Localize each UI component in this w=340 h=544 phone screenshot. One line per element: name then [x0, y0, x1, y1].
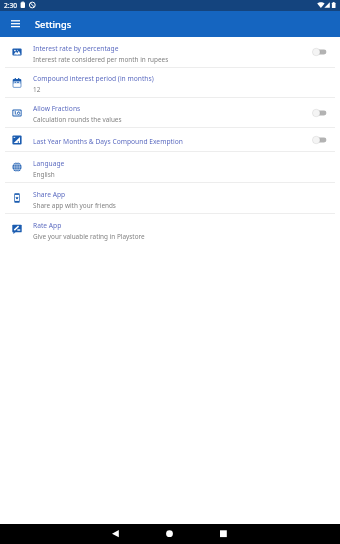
button[interactable]: Toggle Last Year Months & Days Compound … — [298, 128, 340, 151]
button[interactable]: Toggle Allow Fractions — [298, 98, 340, 127]
staticText: Interest rate by percentage — [33, 44, 119, 53]
staticText: English — [33, 170, 55, 179]
button[interactable]: Language — [0, 152, 340, 182]
staticText: Rate App — [33, 221, 62, 230]
staticText: Settings — [35, 18, 72, 31]
button[interactable]: Share App — [0, 183, 340, 213]
staticText: Allow Fractions — [33, 104, 81, 113]
staticText: Interest rate considered per month in ru… — [33, 55, 169, 64]
staticText: Calculation rounds the values — [33, 115, 122, 124]
staticText: Language — [33, 159, 65, 168]
button[interactable]: Interest rate by percentage — [0, 37, 340, 67]
staticText: Share App — [33, 190, 66, 199]
staticText: 2:30 — [4, 1, 18, 10]
button[interactable]: Toggle Interest rate by percentage — [298, 37, 340, 67]
staticText: Share app with your friends — [33, 201, 116, 210]
button[interactable]: Allow Fractions — [0, 98, 340, 127]
staticText: Compound interest period (in months) — [33, 74, 154, 83]
staticText: Last Year Months & Days Compound Exempti… — [33, 137, 183, 146]
button[interactable]: Rate App — [0, 214, 340, 244]
button[interactable]: Last Year Months & Days Compound Exempti… — [0, 128, 340, 151]
button[interactable]: Compound interest period (in months) — [0, 68, 340, 97]
staticText: 12 — [33, 85, 41, 94]
staticText: Give your valuable rating in Playstore — [33, 232, 145, 241]
button[interactable]: Open navigation menu — [0, 11, 31, 37]
